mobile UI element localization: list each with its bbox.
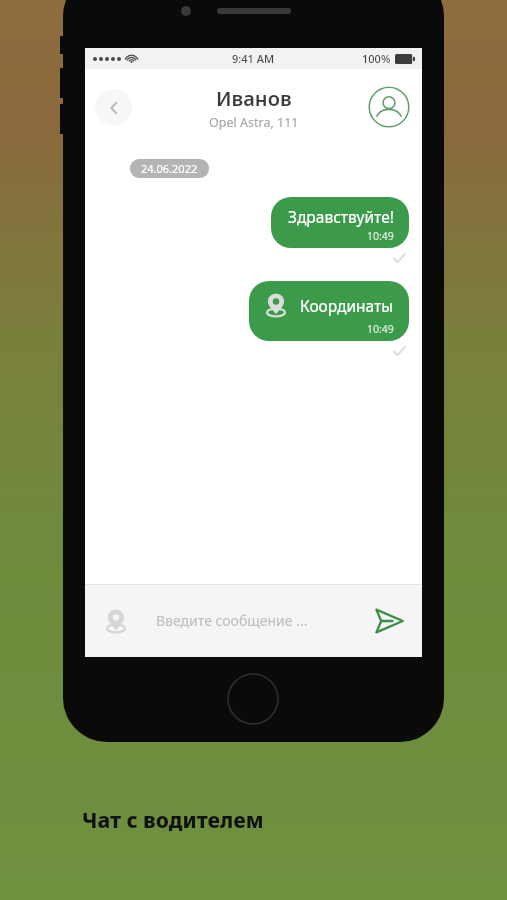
staticText: Opel Astra, 111 xyxy=(209,114,299,131)
button[interactable]: Send xyxy=(370,602,408,640)
staticText: Иванов xyxy=(216,85,292,112)
button[interactable]: Attach location xyxy=(99,604,133,638)
staticText: 10:49 xyxy=(367,229,394,243)
staticText: 100% xyxy=(362,51,391,66)
button[interactable]: Profile xyxy=(368,86,410,128)
staticText: Координаты xyxy=(300,295,394,316)
button[interactable]: Здравствуйте! xyxy=(271,197,409,248)
staticText: Здравствуйте! xyxy=(288,206,394,227)
staticText: 10:49 xyxy=(367,322,394,336)
staticText: Чат с водителем xyxy=(82,806,264,835)
button[interactable]: Координаты xyxy=(249,281,409,341)
staticText: 9:41 AM xyxy=(232,51,275,66)
staticText: Введите сообщение ... xyxy=(156,611,308,630)
button[interactable]: Attach location xyxy=(85,584,422,657)
staticText: 24.06.2022 xyxy=(141,161,198,176)
button[interactable]: Back xyxy=(95,89,132,126)
